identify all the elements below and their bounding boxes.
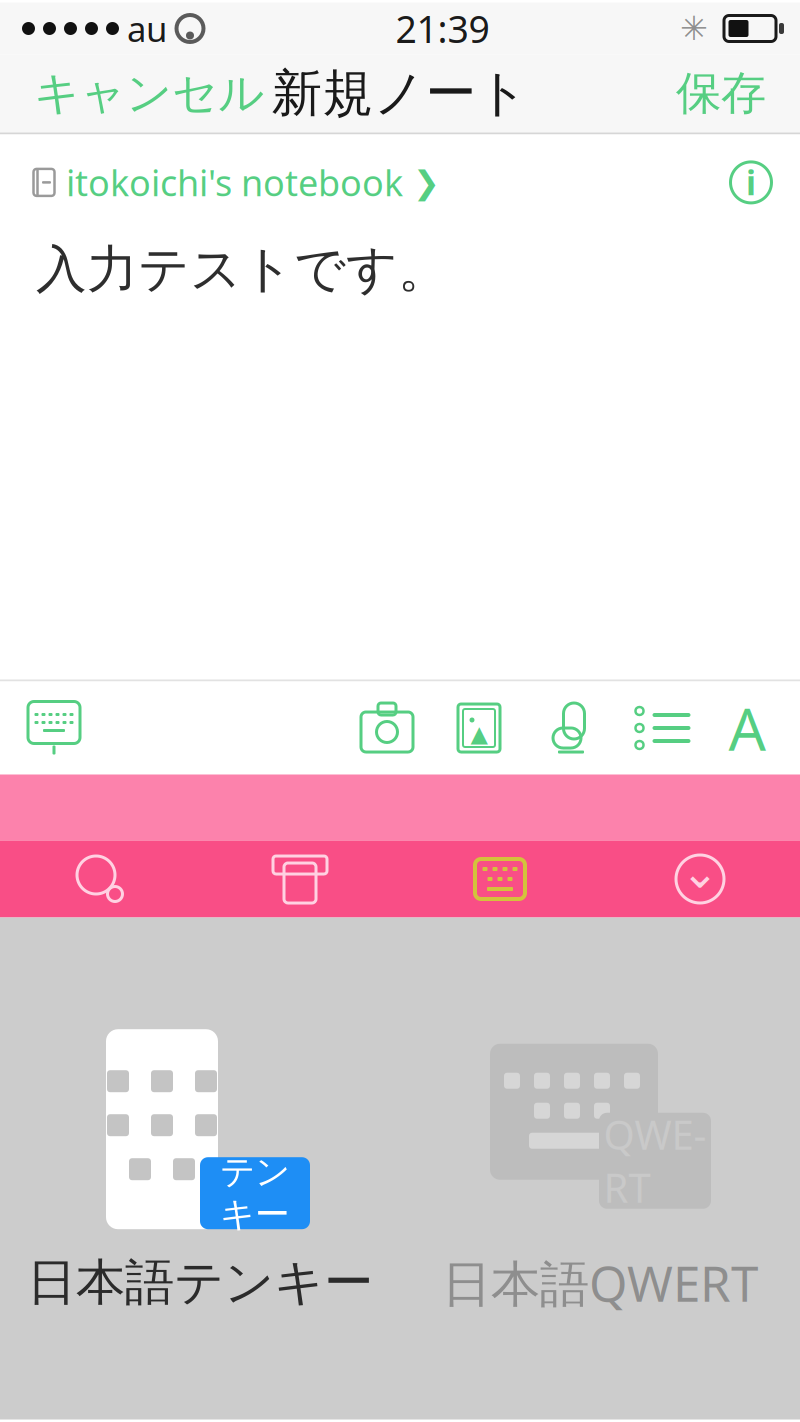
staticText: 保存 — [676, 66, 766, 121]
staticText: au — [127, 5, 167, 51]
button[interactable]: Keyboard — [400, 840, 600, 917]
staticText: itokoichi's notebook — [66, 158, 403, 206]
button[interactable]: Collapse — [600, 840, 800, 917]
staticText: 入力テストです。 — [36, 238, 449, 300]
staticText: ▲ — [470, 721, 487, 747]
staticText: 21:39 — [395, 4, 489, 53]
button[interactable]: Audio — [536, 698, 606, 758]
staticText: キャンセル — [34, 66, 264, 121]
staticText: ⌄ — [681, 846, 719, 898]
staticText: QWERT — [603, 1108, 706, 1214]
staticText: テンキー — [220, 1151, 290, 1236]
button[interactable]: Stickers — [200, 840, 400, 917]
button[interactable]: 保存 — [660, 54, 782, 133]
button[interactable]: キャンセル — [18, 54, 280, 133]
button[interactable]: Camera — [352, 698, 422, 758]
staticText: 日本語QWERT — [442, 1250, 758, 1315]
button[interactable]: Photos — [444, 698, 514, 758]
button[interactable]: QWERT — [400, 1018, 800, 1318]
staticText: ✳ — [680, 10, 708, 47]
button[interactable]: テンキー — [0, 1018, 400, 1318]
staticText: A — [728, 689, 765, 767]
staticText: ❯ — [413, 164, 440, 200]
staticText: 新規ノート — [271, 62, 528, 125]
button[interactable]: Checklist — [628, 698, 698, 758]
button[interactable]: itokoichi's notebook — [32, 148, 440, 216]
button[interactable]: Search — [0, 840, 200, 917]
staticText: i — [746, 160, 756, 205]
staticText: 日本語テンキー — [27, 1252, 373, 1313]
button[interactable]: Hide keyboard — [24, 698, 84, 758]
button[interactable]: Text style — [712, 698, 782, 758]
button[interactable]: Note info — [724, 155, 778, 209]
